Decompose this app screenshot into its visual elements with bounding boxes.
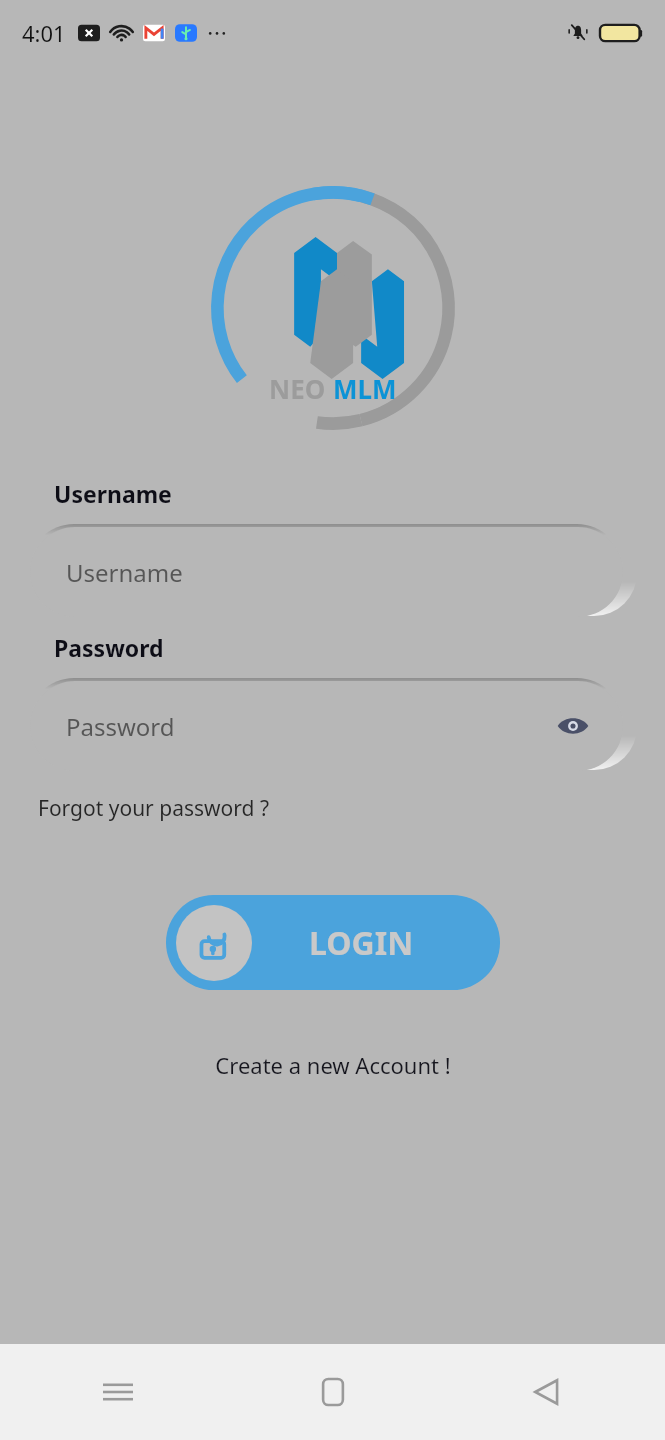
staticText: Username	[54, 478, 172, 509]
staticText: MLM	[333, 371, 397, 406]
staticText: Forgot your password ?	[38, 794, 270, 823]
staticText: Password	[66, 710, 175, 743]
staticText: Username	[66, 556, 183, 589]
staticText: LOGIN	[309, 921, 414, 965]
button[interactable]: Password	[30, 681, 623, 771]
staticText: 4:01	[22, 18, 66, 48]
button[interactable]: Home	[305, 1364, 361, 1420]
staticText: Password	[54, 632, 164, 663]
button[interactable]: Username	[30, 527, 623, 617]
button[interactable]: Create a new Account !	[209, 1044, 457, 1086]
button[interactable]: Recent apps	[90, 1364, 146, 1420]
button[interactable]: Show password	[551, 704, 595, 748]
staticText: Create a new Account !	[215, 1050, 451, 1080]
staticText: NEO	[269, 371, 333, 406]
button[interactable]: Back	[519, 1364, 575, 1420]
button[interactable]: LOGIN	[166, 895, 500, 990]
button[interactable]: Forgot your password ?	[36, 788, 272, 829]
